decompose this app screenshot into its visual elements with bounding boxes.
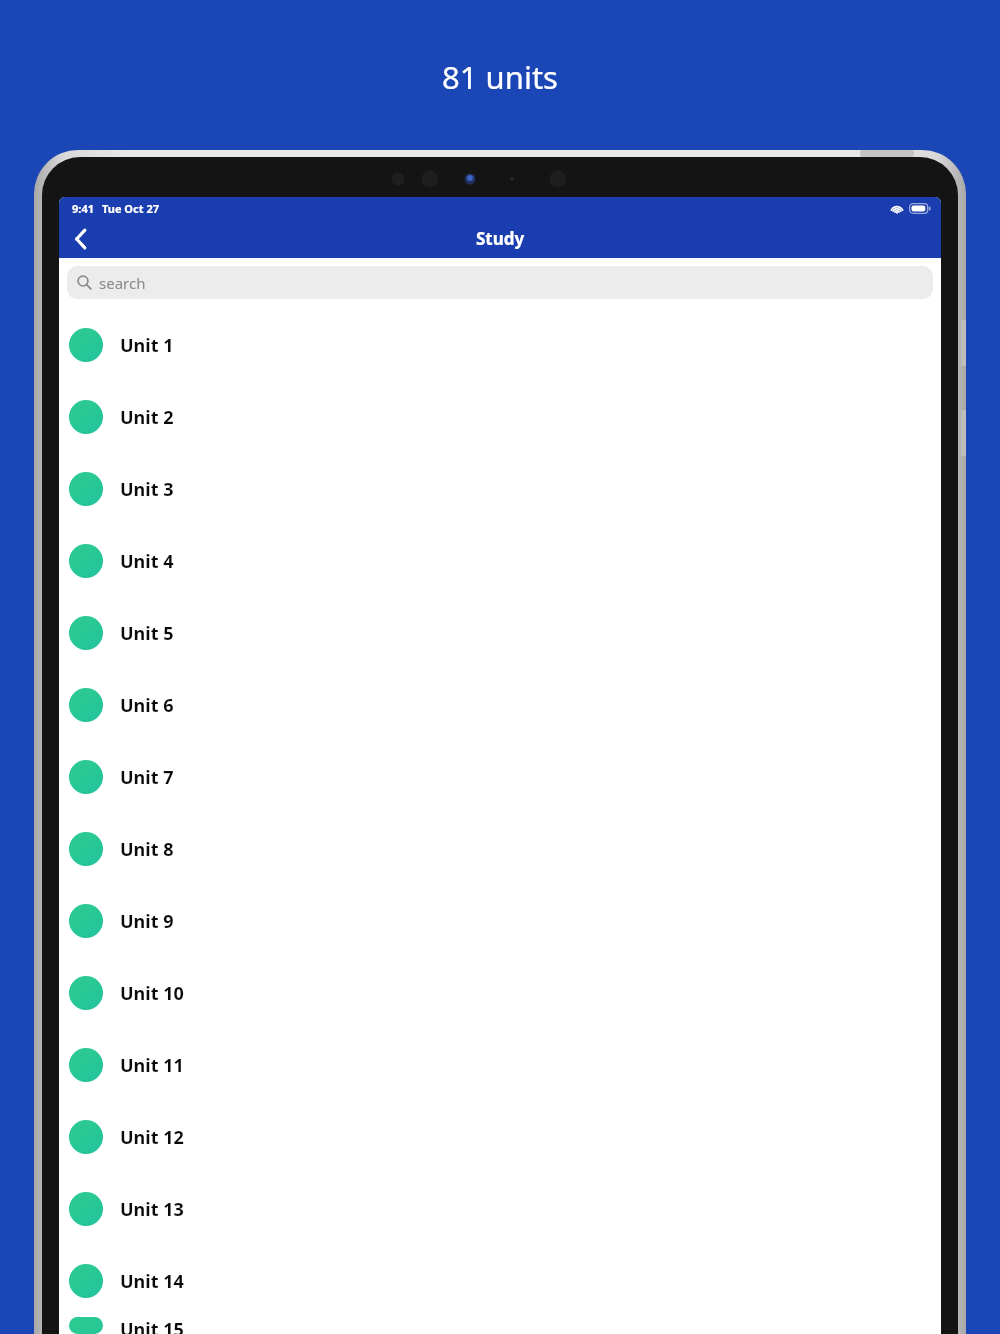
button[interactable]: Unit 10 xyxy=(59,957,941,1029)
button[interactable]: Unit 9 xyxy=(59,885,941,957)
button[interactable]: Unit 1 xyxy=(59,309,941,381)
button[interactable]: Unit 6 xyxy=(59,669,941,741)
button[interactable]: Unit 5 xyxy=(59,597,941,669)
button[interactable]: Unit 11 xyxy=(59,1029,941,1101)
staticText: Unit 13 xyxy=(120,1197,184,1222)
button[interactable]: Unit 13 xyxy=(59,1173,941,1245)
staticText: Study xyxy=(476,227,525,250)
staticText: Unit 6 xyxy=(120,693,174,718)
button[interactable]: Unit 4 xyxy=(59,525,941,597)
staticText: Tue Oct 27 xyxy=(102,201,159,216)
staticText: Unit 10 xyxy=(120,981,184,1006)
button[interactable]: Unit 7 xyxy=(59,741,941,813)
staticText: Unit 7 xyxy=(120,765,174,790)
staticText: search xyxy=(99,273,146,293)
staticText: 81 units xyxy=(442,56,558,98)
staticText: Unit 11 xyxy=(120,1053,184,1078)
button[interactable]: Unit 12 xyxy=(59,1101,941,1173)
staticText: Unit 8 xyxy=(120,837,174,862)
staticText: Unit 2 xyxy=(120,405,174,430)
button[interactable]: Unit 8 xyxy=(59,813,941,885)
staticText: Unit 12 xyxy=(120,1125,184,1150)
staticText: Unit 4 xyxy=(120,549,174,574)
staticText: Unit 1 xyxy=(120,333,174,358)
button[interactable]: Unit 15 xyxy=(59,1317,941,1334)
staticText: Unit 5 xyxy=(120,621,174,646)
staticText: Unit 9 xyxy=(120,909,174,934)
button[interactable]: search xyxy=(67,266,933,299)
button[interactable]: Back xyxy=(59,219,103,258)
button[interactable]: Unit 2 xyxy=(59,381,941,453)
staticText: Unit 14 xyxy=(120,1269,184,1294)
staticText: Unit 3 xyxy=(120,477,174,502)
button[interactable]: Unit 14 xyxy=(59,1245,941,1317)
staticText: Unit 15 xyxy=(120,1317,184,1334)
staticText: 9:41 xyxy=(72,201,94,216)
button[interactable]: Unit 3 xyxy=(59,453,941,525)
